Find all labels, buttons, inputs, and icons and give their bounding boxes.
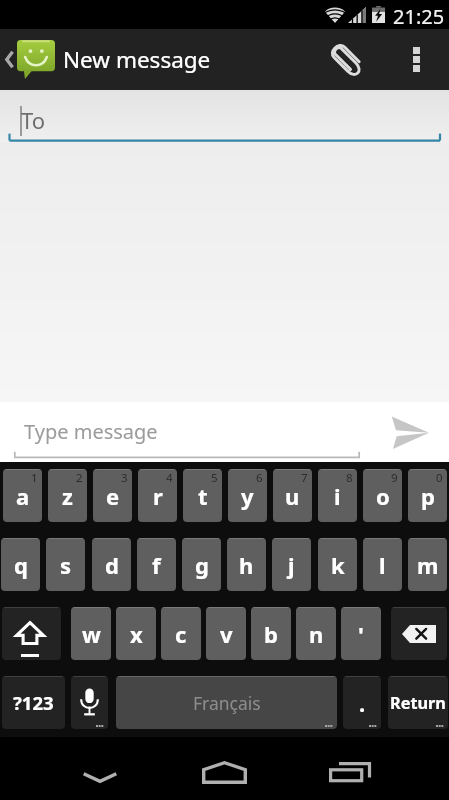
button[interactable]: f: [137, 538, 176, 591]
button[interactable]: s: [46, 538, 85, 591]
button[interactable]: o: [363, 469, 402, 522]
button[interactable]: h: [227, 538, 266, 591]
staticText: d: [105, 550, 119, 580]
button[interactable]: g: [182, 538, 221, 591]
button[interactable]: l: [363, 538, 402, 591]
button[interactable]: w: [71, 607, 111, 660]
staticText: t: [198, 481, 208, 511]
staticText: o: [376, 481, 390, 511]
staticText: 3: [121, 470, 128, 486]
staticText: 2: [76, 470, 83, 486]
staticText: Type message: [24, 418, 158, 445]
button[interactable]: Type message: [14, 406, 360, 460]
staticText: To: [21, 105, 46, 135]
staticText: 8: [346, 470, 353, 486]
button[interactable]: ': [341, 607, 381, 660]
staticText: l: [379, 550, 386, 580]
button[interactable]: n: [296, 607, 336, 660]
button[interactable]: Voice input: [71, 676, 108, 729]
staticText: u: [285, 481, 300, 511]
staticText: f: [152, 550, 161, 580]
button[interactable]: More options: [395, 29, 437, 90]
button[interactable]: Attach: [315, 29, 377, 90]
staticText: 21:25: [393, 3, 445, 30]
staticText: s: [60, 550, 72, 580]
staticText: y: [241, 481, 254, 511]
button[interactable]: x: [116, 607, 156, 660]
staticText: 9: [391, 470, 398, 486]
staticText: i: [334, 481, 341, 511]
staticText: x: [130, 619, 143, 649]
button[interactable]: Français: [116, 676, 337, 729]
staticText: g: [195, 550, 209, 580]
button[interactable]: ?123: [2, 676, 65, 729]
button[interactable]: u: [273, 469, 312, 522]
staticText: r: [153, 481, 163, 511]
staticText: 5: [211, 470, 218, 486]
button[interactable]: i: [318, 469, 357, 522]
staticText: p: [421, 481, 435, 511]
button[interactable]: j: [272, 538, 311, 591]
staticText: j: [288, 550, 295, 580]
button[interactable]: Return: [388, 676, 448, 729]
button[interactable]: p: [408, 469, 447, 522]
staticText: z: [62, 481, 73, 511]
staticText: 6: [256, 470, 263, 486]
staticText: 7: [301, 470, 308, 486]
button[interactable]: Shift: [2, 607, 61, 660]
button[interactable]: Hide keyboard: [60, 737, 140, 800]
button[interactable]: Recent apps: [310, 737, 390, 800]
button[interactable]: b: [251, 607, 291, 660]
button[interactable]: .: [343, 676, 381, 729]
staticText: m: [417, 550, 439, 580]
staticText: a: [16, 481, 30, 511]
staticText: 1: [31, 470, 38, 486]
staticText: q: [14, 550, 28, 580]
button[interactable]: Home: [185, 737, 265, 800]
button[interactable]: r: [138, 469, 177, 522]
button[interactable]: d: [92, 538, 131, 591]
staticText: n: [309, 619, 324, 649]
staticText: k: [331, 550, 345, 580]
staticText: Return: [390, 692, 446, 714]
button[interactable]: m: [408, 538, 447, 591]
staticText: h: [239, 550, 254, 580]
button[interactable]: k: [318, 538, 357, 591]
button[interactable]: Delete: [391, 607, 447, 660]
button[interactable]: y: [228, 469, 267, 522]
button[interactable]: a: [3, 469, 42, 522]
button[interactable]: To: [0, 90, 449, 142]
button[interactable]: c: [161, 607, 201, 660]
staticText: ': [358, 619, 364, 649]
button[interactable]: q: [1, 538, 40, 591]
staticText: w: [82, 619, 101, 649]
staticText: ?123: [13, 690, 54, 715]
staticText: 4: [166, 470, 173, 486]
button[interactable]: New message: [0, 29, 221, 90]
staticText: Français: [193, 691, 261, 715]
staticText: e: [106, 481, 120, 511]
staticText: 0: [436, 470, 443, 486]
staticText: New message: [63, 44, 211, 75]
staticText: .: [359, 688, 366, 718]
button[interactable]: v: [206, 607, 246, 660]
staticText: v: [220, 619, 233, 649]
button[interactable]: e: [93, 469, 132, 522]
staticText: b: [264, 619, 278, 649]
button[interactable]: Send: [377, 402, 443, 462]
button[interactable]: t: [183, 469, 222, 522]
button[interactable]: z: [48, 469, 87, 522]
staticText: c: [175, 619, 187, 649]
